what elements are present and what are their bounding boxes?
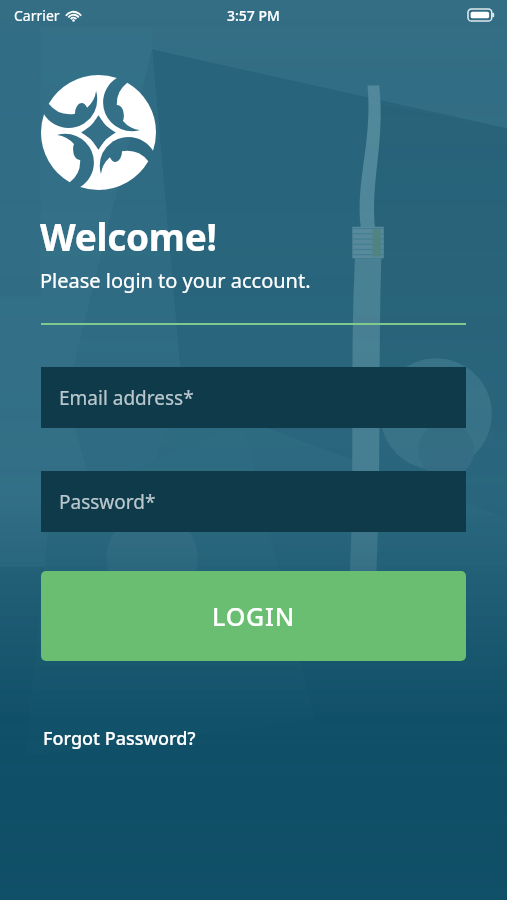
staticText: Welcome! [40,211,217,261]
staticText: Email address* [59,385,194,411]
staticText: Carrier [14,6,60,25]
button[interactable]: LOGIN [41,571,466,661]
staticText: Forgot Password? [43,726,196,751]
staticText: Please login to your account. [40,267,311,294]
staticText: LOGIN [212,599,295,633]
staticText: 3:57 PM [227,6,280,25]
staticText: Password* [59,489,156,515]
button[interactable]: Email address* [41,367,466,428]
button[interactable]: Password* [41,471,466,532]
button[interactable]: Forgot Password? [41,722,198,755]
